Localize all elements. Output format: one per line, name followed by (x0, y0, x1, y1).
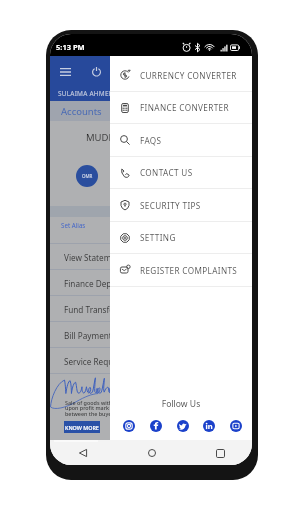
staticText: Fund Transfe (64, 304, 114, 315)
button[interactable]: Recents (211, 444, 229, 462)
staticText: Finance Depo (64, 278, 117, 289)
staticText: Accounts (61, 105, 102, 118)
staticText: MUDH (86, 131, 116, 144)
button[interactable]: Instagram (123, 420, 135, 432)
staticText: Set Alias (61, 221, 86, 229)
button[interactable]: SECURITY TIPS (110, 189, 252, 221)
staticText: KNOW MORE (65, 424, 99, 431)
staticText: CURRENCY CONVERTER (140, 70, 237, 81)
staticText: Follow Us (110, 398, 252, 410)
button[interactable]: LinkedIn (203, 420, 215, 432)
button[interactable]: Logout (87, 62, 106, 81)
staticText: FINANCE CONVERTER (140, 102, 229, 113)
staticText: REGISTER COMPLAINTS (140, 265, 238, 276)
button[interactable]: CONTACT US (110, 157, 252, 188)
staticText: Service Requ (64, 356, 114, 367)
button[interactable]: KNOW MORE (64, 421, 100, 433)
button[interactable]: Twitter (177, 420, 189, 432)
staticText: 5:13 PM (56, 42, 85, 52)
button[interactable]: Open navigation menu (56, 62, 75, 81)
staticText: View Stateme (64, 252, 116, 263)
button[interactable]: CURRENCY CONVERTER (110, 59, 252, 91)
button[interactable]: Back (74, 444, 92, 462)
button[interactable]: REGISTER COMPLAINTS (110, 254, 252, 286)
staticText: OMR (82, 173, 93, 179)
staticText: CONTACT US (140, 167, 193, 178)
staticText: Bill Payment (64, 330, 112, 341)
button[interactable]: FINANCE CONVERTER (110, 92, 252, 123)
staticText: SULAIMA AHMED (58, 89, 114, 98)
button[interactable]: SETTING (110, 222, 252, 253)
staticText: SECURITY TIPS (140, 200, 201, 211)
staticText: FAQS (140, 135, 162, 146)
button[interactable]: Home (143, 444, 161, 462)
button[interactable]: FAQS (110, 124, 252, 156)
button[interactable]: Facebook (150, 420, 162, 432)
staticText: Sale of goods with upon profit mark u be… (65, 399, 114, 418)
button[interactable]: YouTube (230, 420, 242, 432)
staticText: SETTING (140, 232, 176, 243)
